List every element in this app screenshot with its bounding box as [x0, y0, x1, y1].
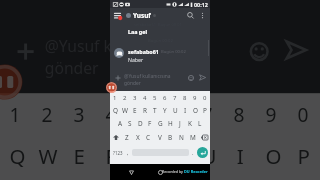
- button[interactable]: Open navigation drawer: [112, 10, 123, 21]
- button[interactable]: W: [120, 104, 130, 117]
- button[interactable]: Add attachment: [6, 32, 42, 68]
- staticText: Y: [163, 106, 167, 115]
- button[interactable]: E: [130, 104, 140, 117]
- button[interactable]: I: [180, 104, 190, 117]
- staticText: H: [168, 119, 173, 128]
- staticText: Laa gel: [128, 28, 148, 35]
- button[interactable]: 7: [170, 92, 180, 104]
- button[interactable]: T: [150, 104, 160, 117]
- button[interactable]: Send message: [278, 32, 314, 68]
- button[interactable]: Back: [126, 167, 136, 177]
- button[interactable]: Q: [110, 104, 120, 117]
- button[interactable]: K: [185, 117, 195, 130]
- button[interactable]: H: [165, 117, 175, 130]
- button[interactable]: 3: [130, 92, 140, 104]
- button[interactable]: N: [176, 130, 187, 144]
- button[interactable]: 8: [224, 96, 256, 135]
- button[interactable]: 8: [180, 92, 190, 104]
- button[interactable]: E: [64, 135, 96, 176]
- button[interactable]: Add attachment: [112, 72, 123, 83]
- button[interactable]: 0: [288, 96, 320, 135]
- button[interactable]: D: [135, 117, 145, 130]
- button[interactable]: Period: [189, 144, 197, 161]
- button[interactable]: F: [145, 117, 155, 130]
- staticText: 5: [153, 94, 157, 102]
- button[interactable]: Home: [155, 167, 165, 177]
- staticText: U: [173, 106, 178, 115]
- staticText: T: [153, 106, 157, 115]
- button[interactable]: Emoji: [185, 72, 196, 83]
- button[interactable]: U: [192, 135, 224, 176]
- button[interactable]: Send message: [197, 72, 208, 83]
- button[interactable]: 4: [96, 96, 128, 135]
- staticText: Q: [10, 141, 26, 170]
- button[interactable]: O: [190, 104, 200, 117]
- button[interactable]: P: [200, 104, 210, 117]
- button[interactable]: U: [170, 104, 180, 117]
- button[interactable]: M: [187, 130, 198, 144]
- button[interactable]: Y: [160, 104, 170, 117]
- button[interactable]: 6: [160, 92, 170, 104]
- button[interactable]: 0: [200, 92, 210, 104]
- staticText: B: [168, 133, 173, 142]
- button[interactable]: V: [154, 130, 165, 144]
- button[interactable]: Y: [160, 135, 192, 176]
- staticText: T: [138, 141, 150, 170]
- button[interactable]: Comma: [124, 144, 132, 161]
- staticText: 3: [74, 103, 86, 128]
- button[interactable]: G: [155, 117, 165, 130]
- button[interactable]: More options: [197, 10, 208, 21]
- staticText: D: [138, 119, 143, 128]
- staticText: @Yusuf kullanıcısına: [124, 73, 171, 80]
- button[interactable]: 4: [140, 92, 150, 104]
- staticText: 3: [133, 94, 137, 102]
- button[interactable]: 3: [64, 96, 96, 135]
- button[interactable]: Backspace: [198, 130, 210, 144]
- button[interactable]: R: [140, 104, 150, 117]
- button[interactable]: 9: [256, 96, 288, 135]
- button[interactable]: D: [80, 176, 112, 180]
- button[interactable]: W: [32, 135, 64, 176]
- button[interactable]: 2: [120, 92, 130, 104]
- button[interactable]: A: [115, 117, 125, 130]
- button[interactable]: 5: [150, 92, 160, 104]
- button[interactable]: 1: [0, 96, 32, 135]
- button[interactable]: 9: [190, 92, 200, 104]
- button[interactable]: B: [165, 130, 176, 144]
- button[interactable]: S: [125, 117, 135, 130]
- button[interactable]: Emoji: [240, 32, 275, 68]
- button[interactable]: Z: [122, 130, 132, 144]
- button[interactable]: 5: [128, 96, 160, 135]
- button[interactable]: Enter: [197, 147, 208, 158]
- button[interactable]: C: [143, 130, 154, 144]
- button[interactable]: Search: [185, 10, 196, 21]
- button[interactable]: 6: [160, 96, 192, 135]
- button[interactable]: 2: [32, 96, 64, 135]
- button[interactable]: O: [256, 135, 288, 176]
- button[interactable]: ?123: [112, 144, 124, 161]
- button[interactable]: T: [128, 135, 160, 176]
- button[interactable]: I: [224, 135, 256, 176]
- button[interactable]: Shift: [110, 130, 122, 144]
- button[interactable]: L: [195, 117, 205, 130]
- button[interactable]: J: [175, 117, 185, 130]
- button[interactable]: J: [208, 176, 240, 180]
- button[interactable]: R: [96, 135, 128, 176]
- button[interactable]: P: [288, 135, 320, 176]
- button[interactable]: 1: [110, 92, 120, 104]
- button[interactable]: X: [132, 130, 143, 144]
- button[interactable]: Q: [0, 135, 32, 176]
- button[interactable]: 7: [192, 96, 224, 135]
- staticText: 7: [202, 103, 214, 128]
- staticText: Y: [170, 141, 182, 170]
